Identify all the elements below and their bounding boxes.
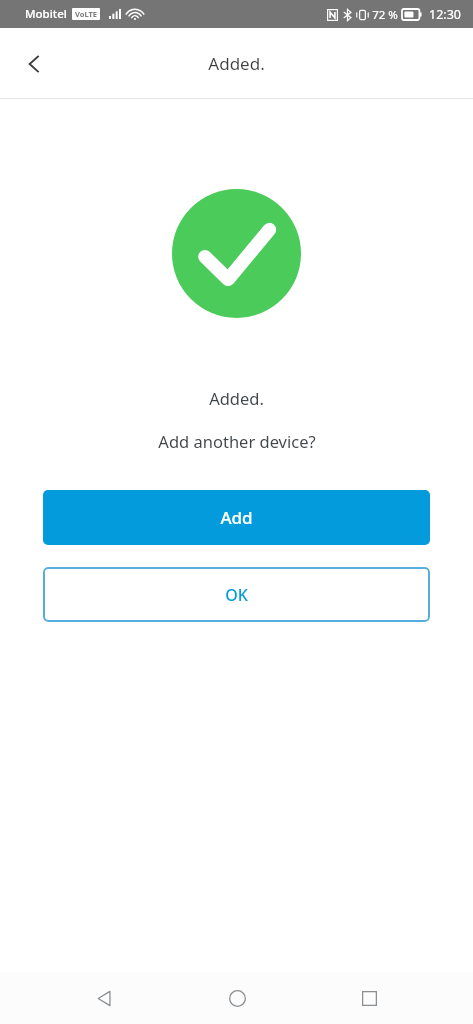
staticText: 72 % xyxy=(372,7,398,23)
button[interactable]: Home xyxy=(208,972,266,1024)
button[interactable]: Back xyxy=(10,40,58,88)
staticText: Added. xyxy=(208,52,265,75)
staticText: Add another device? xyxy=(158,430,316,452)
staticText: 12:30 xyxy=(429,6,461,23)
staticText: OK xyxy=(225,584,248,606)
staticText: VoLTE xyxy=(75,9,97,19)
staticText: Add xyxy=(220,506,253,529)
button[interactable]: Add xyxy=(43,490,430,545)
button[interactable]: OK xyxy=(43,567,430,622)
button[interactable]: Back xyxy=(75,972,133,1024)
staticText: Mobitel xyxy=(25,6,67,22)
button[interactable]: Recent apps xyxy=(340,972,398,1024)
staticText: Added. xyxy=(209,387,264,409)
